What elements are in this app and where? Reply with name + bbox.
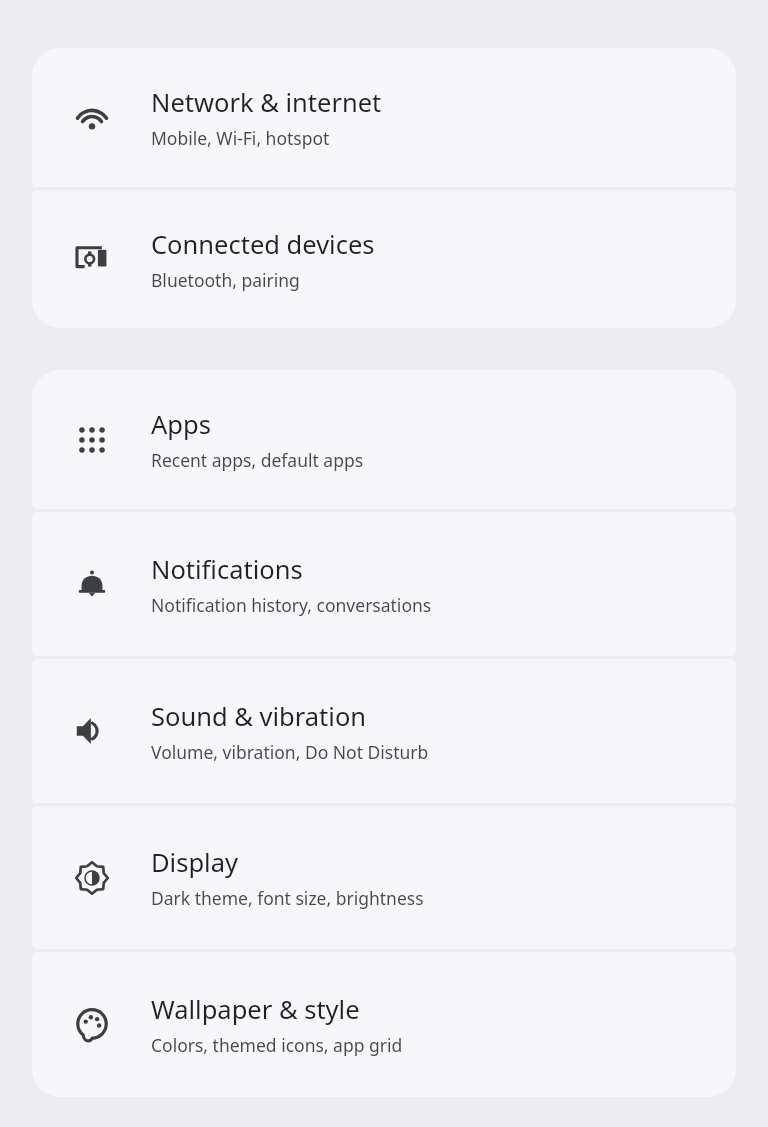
button[interactable]: Connected devices: [32, 190, 736, 328]
staticText: Notifications: [151, 552, 303, 587]
button[interactable]: Wallpaper & style: [32, 952, 736, 1097]
other: Network and internet: [32, 48, 736, 187]
button[interactable]: Display: [32, 806, 736, 949]
other: Wallpaper and style: [32, 952, 736, 1097]
button[interactable]: Sound & vibration: [32, 659, 736, 803]
staticText: Wallpaper & style: [151, 992, 360, 1027]
staticText: Dark theme, font size, brightness: [151, 886, 424, 910]
button[interactable]: Notifications: [32, 512, 736, 656]
other: Notifications: [32, 512, 736, 656]
staticText: Bluetooth, pairing: [151, 268, 300, 292]
staticText: Recent apps, default apps: [151, 448, 364, 472]
staticText: Colors, themed icons, app grid: [151, 1033, 403, 1057]
staticText: Sound & vibration: [151, 699, 367, 734]
staticText: Display: [151, 845, 238, 880]
staticText: Volume, vibration, Do Not Disturb: [151, 740, 429, 764]
other: Apps: [32, 370, 736, 509]
staticText: Notification history, conversations: [151, 593, 432, 617]
other: Sound and vibration: [32, 659, 736, 803]
other: Display: [32, 806, 736, 949]
staticText: Connected devices: [151, 227, 375, 262]
staticText: Mobile, Wi-Fi, hotspot: [151, 126, 330, 150]
staticText: Network & internet: [151, 85, 382, 120]
other: Connected devices: [32, 190, 736, 328]
button[interactable]: Apps: [32, 370, 736, 509]
button[interactable]: Network & internet: [32, 48, 736, 187]
staticText: Apps: [151, 407, 211, 442]
